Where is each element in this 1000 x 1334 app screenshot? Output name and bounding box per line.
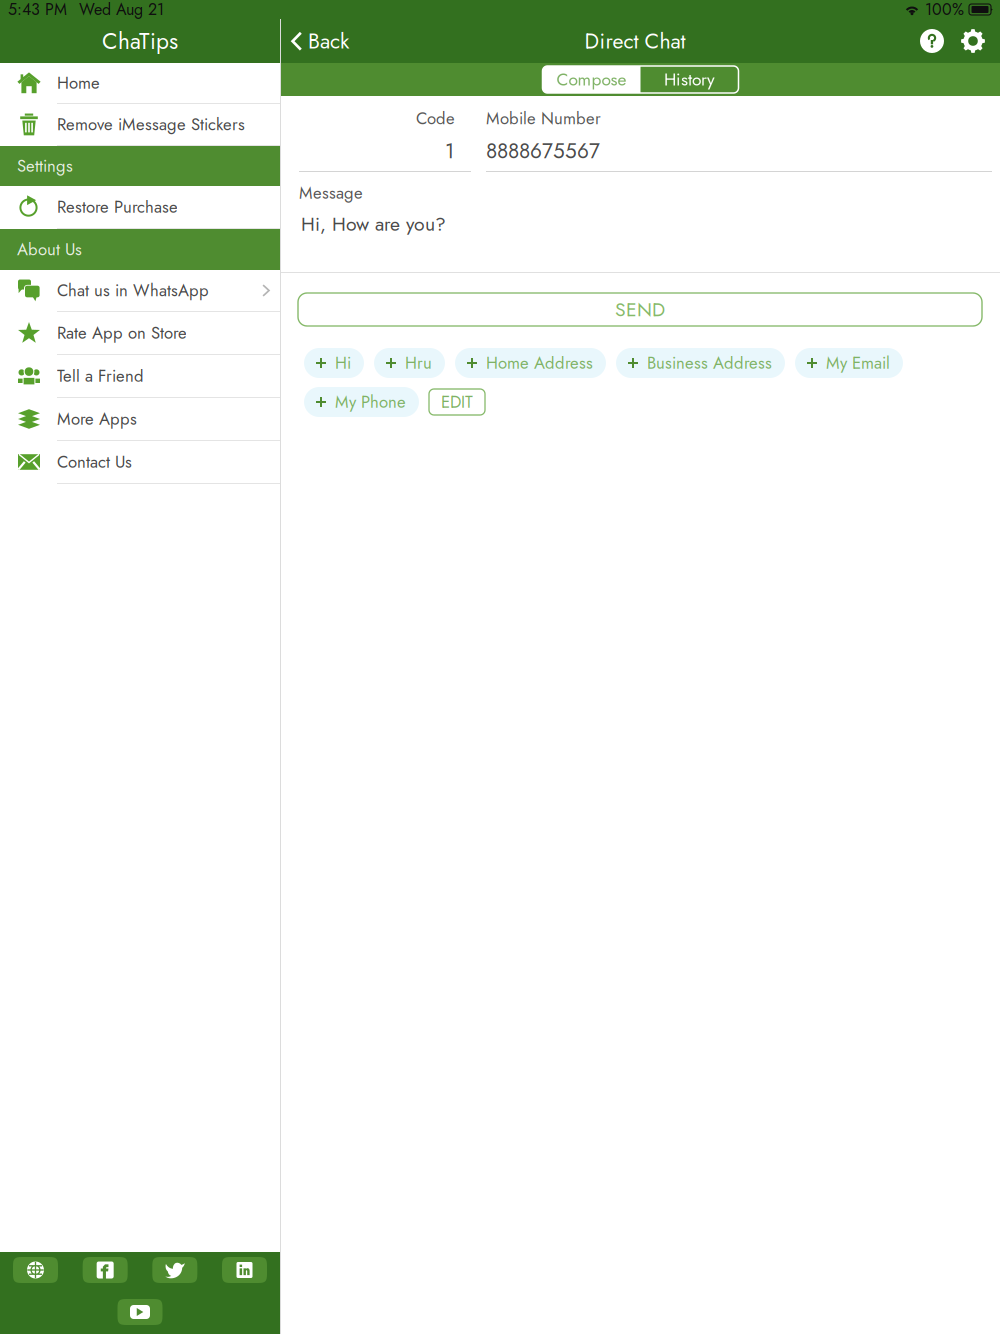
button[interactable]: More Apps: [0, 398, 280, 441]
staticText: History: [664, 67, 715, 92]
staticText: Contact Us: [57, 450, 132, 474]
staticText: Hi: [335, 351, 351, 375]
button[interactable]: Hi: [304, 348, 364, 378]
button[interactable]: Home: [0, 63, 280, 104]
staticText: More Apps: [57, 407, 137, 431]
button[interactable]: Compose: [542, 66, 640, 93]
button[interactable]: Remove iMessage Stickers: [0, 104, 280, 146]
staticText: About Us: [17, 237, 82, 262]
staticText: Mobile Number: [486, 106, 601, 131]
staticText: Code: [416, 106, 455, 131]
button[interactable]: Help: [911, 19, 953, 63]
staticText: 100%: [925, 0, 964, 21]
staticText: Message: [299, 181, 363, 205]
staticText: Chat us in WhatsApp: [57, 278, 209, 303]
button[interactable]: History: [640, 66, 738, 93]
staticText: Home: [57, 71, 100, 95]
staticText: Compose: [556, 67, 626, 92]
staticText: Direct Chat: [584, 26, 685, 56]
staticText: Business Address: [647, 351, 772, 375]
button[interactable]: Tell a Friend: [0, 355, 280, 398]
staticText: Wed Aug 21: [79, 0, 164, 21]
button[interactable]: Home Address: [455, 348, 606, 378]
staticText: Hru: [405, 351, 432, 375]
staticText: ChaTips: [102, 25, 178, 57]
staticText: EDIT: [441, 390, 473, 414]
button[interactable]: Business Address: [616, 348, 785, 378]
staticText: Settings: [17, 154, 73, 178]
button[interactable]: SEND: [298, 293, 982, 326]
staticText: Rate App on Store: [57, 321, 187, 345]
staticText: Restore Purchase: [57, 195, 178, 219]
button[interactable]: Twitter: [152, 1257, 197, 1283]
staticText: Remove iMessage Stickers: [57, 112, 245, 137]
button[interactable]: YouTube: [117, 1299, 162, 1325]
staticText: SEND: [615, 295, 665, 323]
button[interactable]: EDIT: [429, 389, 485, 415]
button[interactable]: Contact Us: [0, 441, 280, 484]
button[interactable]: Restore Purchase: [0, 186, 280, 229]
button[interactable]: Chat us in WhatsApp: [0, 270, 280, 312]
button[interactable]: Hru: [374, 348, 445, 378]
button[interactable]: Website: [13, 1257, 58, 1283]
staticText: My Phone: [335, 390, 406, 414]
staticText: Home Address: [486, 351, 593, 375]
staticText: Tell a Friend: [57, 364, 144, 388]
staticText: Hi, How are you?: [301, 210, 446, 238]
button[interactable]: My Email: [795, 348, 903, 378]
button[interactable]: Settings: [953, 19, 993, 63]
staticText: Back: [308, 26, 349, 56]
button[interactable]: My Phone: [304, 387, 419, 417]
staticText: 1: [445, 136, 454, 166]
button[interactable]: Back: [281, 19, 359, 63]
staticText: 5:43 PM: [8, 0, 67, 21]
staticText: My Email: [826, 351, 890, 375]
staticText: 8888675567: [486, 136, 600, 166]
button[interactable]: Rate App on Store: [0, 312, 280, 355]
button[interactable]: LinkedIn: [222, 1257, 267, 1283]
button[interactable]: Facebook: [83, 1257, 128, 1283]
